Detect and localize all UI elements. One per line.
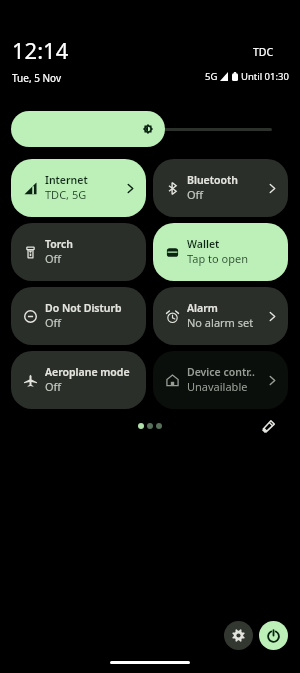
staticText: Do Not Disturb [45, 301, 122, 315]
button[interactable]: Edit tiles [263, 420, 275, 432]
staticText: Tap to open [187, 251, 248, 266]
staticText: Off [187, 187, 204, 202]
button[interactable]: Torch [11, 223, 146, 281]
button[interactable]: Settings [224, 621, 253, 650]
staticText: 5G [205, 70, 218, 83]
staticText: Tue, 5 Nov [12, 71, 62, 85]
staticText: Alarm [187, 301, 218, 315]
staticText: Until 01:30 [241, 70, 289, 83]
staticText: 12:14 [12, 35, 69, 65]
staticText: Torch [45, 237, 74, 251]
staticText: TDC [253, 45, 274, 59]
staticText: Off [45, 315, 62, 330]
staticText: Unavailable [187, 379, 248, 394]
button[interactable]: Bluetooth [153, 159, 288, 217]
button[interactable]: Wallet [153, 223, 288, 281]
button[interactable]: Device contr.. [153, 351, 288, 409]
staticText: TDC, 5G [45, 187, 87, 202]
staticText: Off [45, 251, 62, 266]
button[interactable]: Internet [11, 159, 146, 217]
staticText: Bluetooth [187, 173, 238, 187]
button[interactable]: Brightness [11, 111, 165, 147]
staticText: Device contr.. [187, 365, 255, 379]
button[interactable]: Power [259, 621, 288, 650]
staticText: No alarm set [187, 315, 254, 330]
staticText: Aeroplane mode [45, 365, 130, 379]
button[interactable]: Alarm [153, 287, 288, 345]
button[interactable]: Aeroplane mode [11, 351, 146, 409]
staticText: Off [45, 379, 62, 394]
staticText: Internet [45, 173, 88, 187]
button[interactable]: Do Not Disturb [11, 287, 146, 345]
staticText: Wallet [187, 237, 220, 251]
